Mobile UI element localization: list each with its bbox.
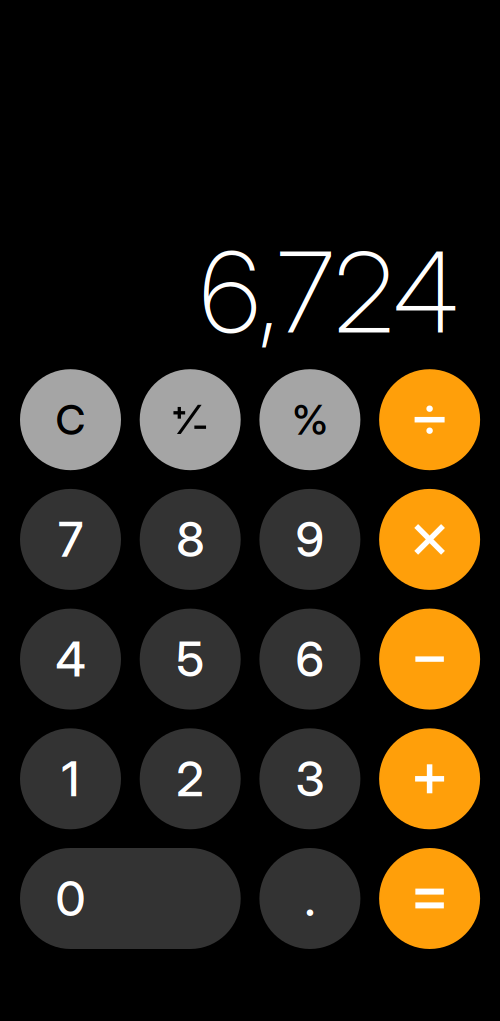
button[interactable]: Plus minus	[140, 369, 241, 470]
button[interactable]: 7	[20, 489, 121, 590]
button[interactable]: C	[20, 369, 121, 470]
button[interactable]: 6	[259, 609, 360, 710]
button[interactable]: 9	[259, 489, 360, 590]
button[interactable]: Multiply	[379, 489, 480, 590]
staticText: 4	[55, 630, 85, 688]
staticText: 6	[295, 630, 324, 688]
staticText: C	[55, 395, 85, 445]
staticText: 7	[58, 510, 83, 568]
button[interactable]: 5	[140, 609, 241, 710]
button[interactable]: 0	[20, 848, 241, 949]
button[interactable]: 1	[20, 728, 121, 829]
staticText: %	[292, 395, 328, 445]
button[interactable]: .	[259, 848, 360, 949]
staticText: 3	[295, 750, 324, 808]
staticText: 2	[176, 750, 204, 808]
button[interactable]: Minus	[379, 609, 480, 710]
staticText: 9	[295, 510, 324, 568]
staticText: 8	[176, 510, 204, 568]
button[interactable]: %	[259, 369, 360, 470]
button[interactable]: 8	[140, 489, 241, 590]
button[interactable]: 2	[140, 728, 241, 829]
button[interactable]: Divide	[379, 369, 480, 470]
staticText: 1	[61, 750, 79, 808]
staticText: .	[304, 869, 315, 928]
button[interactable]: Equals	[379, 848, 480, 949]
button[interactable]: 4	[20, 609, 121, 710]
staticText: 5	[176, 630, 204, 688]
button[interactable]: 3	[259, 728, 360, 829]
staticText: 6,724	[200, 225, 458, 359]
button[interactable]: Plus	[379, 728, 480, 829]
staticText: 0	[55, 869, 85, 928]
